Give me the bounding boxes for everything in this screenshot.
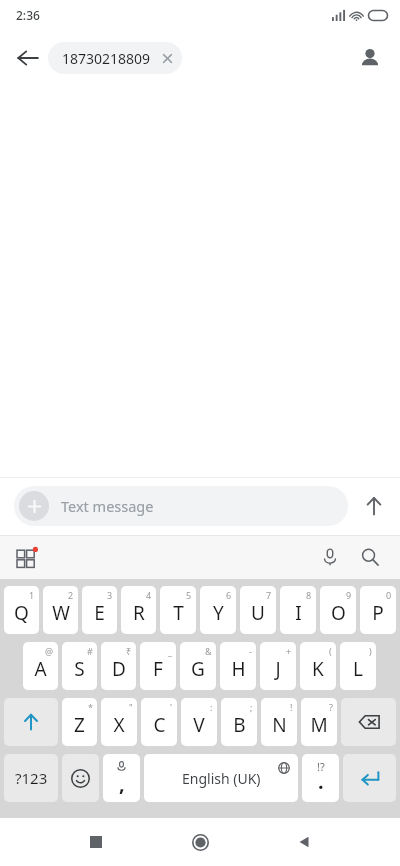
- staticText: G: [191, 656, 205, 682]
- staticText: !: [290, 701, 293, 713]
- staticText: R: [133, 600, 145, 626]
- staticText: W: [52, 600, 70, 626]
- button[interactable]: (: [300, 642, 336, 690]
- staticText: ): [369, 645, 372, 657]
- button[interactable]: Emoji: [62, 754, 99, 802]
- staticText: ?123: [15, 768, 48, 788]
- staticText: 7: [266, 589, 272, 601]
- staticText: (: [329, 645, 332, 657]
- button[interactable]: 5: [160, 586, 196, 634]
- button[interactable]: Enter: [343, 754, 396, 802]
- staticText: ₹: [126, 645, 132, 657]
- staticText: *: [88, 701, 93, 713]
- button[interactable]: Backspace: [341, 698, 396, 746]
- staticText: O: [331, 600, 346, 626]
- button[interactable]: 18730218809: [48, 42, 182, 74]
- staticText: E: [94, 600, 105, 626]
- button[interactable]: Apps: [8, 538, 46, 576]
- staticText: .: [318, 768, 324, 795]
- staticText: ?: [329, 701, 333, 713]
- staticText: 2: [68, 589, 74, 601]
- staticText: X: [113, 712, 125, 738]
- staticText: P: [372, 600, 384, 626]
- staticText: +: [286, 645, 292, 657]
- staticText: ;: [250, 701, 253, 713]
- staticText: -: [249, 645, 252, 657]
- button[interactable]: #: [62, 642, 97, 690]
- staticText: K: [312, 656, 324, 682]
- button[interactable]: ?: [301, 698, 337, 746]
- staticText: V: [193, 712, 205, 738]
- staticText: @: [45, 645, 54, 657]
- button[interactable]: ₹: [101, 642, 136, 690]
- staticText: 18730218809: [62, 49, 151, 68]
- staticText: Z: [74, 712, 85, 738]
- staticText: N: [272, 712, 287, 738]
- staticText: J: [275, 656, 281, 682]
- button[interactable]: Home: [180, 822, 220, 862]
- button[interactable]: !: [261, 698, 297, 746]
- button[interactable]: -: [220, 642, 256, 690]
- button[interactable]: 8: [280, 586, 316, 634]
- button[interactable]: 7: [240, 586, 276, 634]
- staticText: :: [210, 701, 213, 713]
- staticText: C: [153, 712, 166, 738]
- staticText: B: [233, 712, 246, 738]
- button[interactable]: Back: [8, 38, 48, 78]
- button[interactable]: Voice input: [310, 537, 350, 577]
- button[interactable]: 2: [43, 586, 78, 634]
- staticText: S: [74, 656, 85, 682]
- staticText: Y: [213, 600, 224, 626]
- button[interactable]: 4: [121, 586, 156, 634]
- staticText: D: [112, 656, 126, 682]
- staticText: U: [251, 600, 265, 626]
- button[interactable]: Search: [350, 537, 390, 577]
- button[interactable]: Period: [302, 754, 339, 802]
- button[interactable]: ': [141, 698, 177, 746]
- staticText: 8: [306, 589, 312, 601]
- button[interactable]: 1: [4, 586, 39, 634]
- staticText: Q: [14, 600, 29, 626]
- staticText: ': [170, 701, 173, 713]
- staticText: 2:36: [16, 7, 40, 23]
- button[interactable]: Symbols: [4, 754, 58, 802]
- staticText: 5: [186, 589, 192, 601]
- staticText: _: [168, 645, 172, 657]
- button[interactable]: 6: [200, 586, 236, 634]
- staticText: ": [129, 701, 133, 713]
- button[interactable]: +: [260, 642, 296, 690]
- staticText: 6: [226, 589, 232, 601]
- staticText: L: [353, 656, 363, 682]
- staticText: #: [87, 645, 93, 657]
- staticText: M: [310, 712, 328, 738]
- staticText: A: [34, 656, 47, 682]
- button[interactable]: Space: [144, 754, 298, 802]
- button[interactable]: 0: [360, 586, 396, 634]
- staticText: 1: [29, 589, 35, 601]
- button[interactable]: *: [62, 698, 97, 746]
- button[interactable]: Contact details: [350, 38, 390, 78]
- button[interactable]: &: [180, 642, 216, 690]
- button[interactable]: 9: [320, 586, 356, 634]
- button[interactable]: ;: [221, 698, 257, 746]
- staticText: I: [295, 600, 302, 626]
- button[interactable]: _: [140, 642, 176, 690]
- staticText: English (UK): [182, 769, 261, 788]
- staticText: H: [231, 656, 246, 682]
- staticText: !?: [317, 759, 325, 774]
- button[interactable]: ": [101, 698, 137, 746]
- staticText: T: [173, 600, 184, 626]
- staticText: 9: [346, 589, 352, 601]
- button[interactable]: ): [340, 642, 376, 690]
- button[interactable]: Recents: [76, 822, 116, 862]
- button[interactable]: Send: [348, 482, 400, 530]
- button[interactable]: @: [23, 642, 58, 690]
- staticText: &: [205, 645, 212, 657]
- staticText: 4: [146, 589, 152, 601]
- button[interactable]: Text message: [14, 486, 348, 526]
- button[interactable]: Comma: [103, 754, 140, 802]
- button[interactable]: Back: [284, 822, 324, 862]
- button[interactable]: 3: [82, 586, 117, 634]
- button[interactable]: :: [181, 698, 217, 746]
- button[interactable]: Shift: [4, 698, 58, 746]
